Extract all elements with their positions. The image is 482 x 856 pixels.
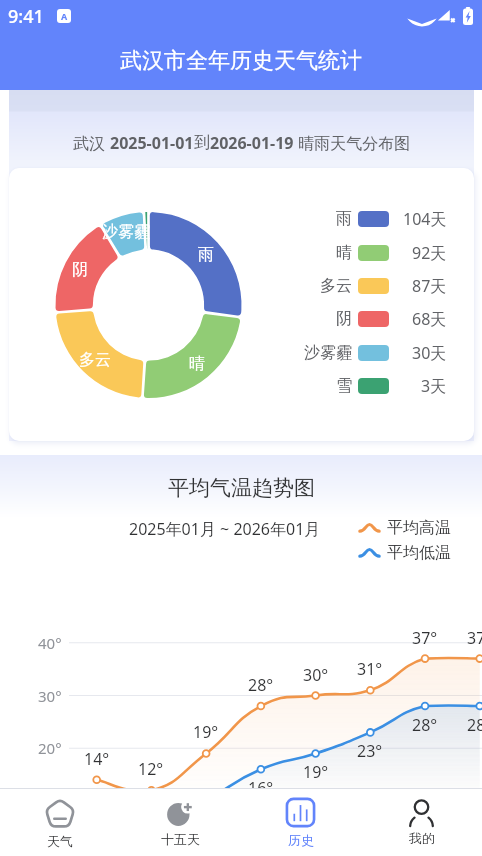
staticText: 天气 — [47, 833, 73, 849]
staticText: 武汉市全年历史天气统计 — [120, 47, 362, 75]
staticText: 104天 — [403, 208, 447, 230]
staticText: 37° — [412, 627, 438, 649]
staticText: 阴 — [72, 260, 88, 280]
staticText: 沙雾霾 — [102, 222, 150, 242]
staticText: 雨 — [198, 245, 214, 265]
staticText: 28° — [248, 674, 274, 696]
staticText: 30° — [303, 664, 329, 686]
staticText: 晴雨天气分布图 — [294, 132, 411, 154]
staticText: 武汉 — [73, 132, 110, 154]
staticText: 16° — [248, 777, 274, 799]
staticText: 19° — [303, 761, 329, 783]
staticText: 阴 — [336, 309, 352, 329]
other: 十五天 — [166, 799, 194, 827]
staticText: 31° — [357, 658, 383, 680]
staticText: 雨 — [336, 209, 352, 229]
button[interactable]: 十五天 — [120, 789, 240, 856]
staticText: 我的 — [409, 830, 435, 846]
staticText: 37° — [467, 627, 482, 649]
staticText: 2025年01月 ~ 2026年01月 — [129, 518, 321, 540]
staticText: 多云 — [320, 276, 352, 296]
staticText: 68天 — [412, 308, 447, 330]
staticText: 14° — [84, 748, 110, 770]
staticText: 平均高温 — [387, 518, 451, 538]
staticText: 平均低温 — [387, 543, 451, 563]
other: 历史 — [285, 797, 316, 828]
staticText: 晴 — [336, 243, 352, 263]
staticText: A — [61, 10, 68, 22]
staticText: 23° — [357, 740, 383, 762]
staticText: 多云 — [79, 350, 111, 370]
other: 天气 — [44, 797, 76, 829]
other: 我的 — [408, 799, 435, 826]
button[interactable]: 天气 — [0, 789, 120, 856]
staticText: 19° — [193, 721, 219, 743]
staticText: 9:41 — [8, 4, 44, 29]
staticText: 2025-01-01 — [110, 132, 194, 154]
staticText: 3天 — [421, 375, 447, 397]
button[interactable]: 我的 — [361, 789, 482, 856]
staticText: 30天 — [412, 342, 447, 364]
staticText: 20° — [38, 738, 62, 758]
staticText: 到 — [194, 133, 210, 153]
button[interactable]: 历史 — [240, 789, 361, 856]
staticText: 28° — [412, 714, 438, 736]
staticText: 历史 — [288, 832, 314, 848]
staticText: 沙雾霾 — [304, 343, 352, 363]
staticText: 2026-01-19 — [210, 132, 294, 154]
staticText: 92天 — [412, 242, 447, 264]
staticText: 87天 — [412, 275, 447, 297]
staticText: 12° — [138, 758, 164, 780]
staticText: 平均气温趋势图 — [168, 475, 315, 501]
staticText: 28° — [467, 714, 482, 736]
staticText: 晴 — [189, 354, 205, 374]
staticText: 十五天 — [161, 831, 200, 847]
staticText: 40° — [38, 633, 62, 653]
staticText: 30° — [38, 686, 62, 706]
staticText: 雪 — [336, 376, 352, 396]
